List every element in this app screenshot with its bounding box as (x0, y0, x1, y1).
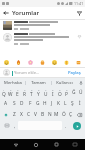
button[interactable]: S (10, 99, 18, 108)
button[interactable]: Ö (60, 110, 67, 119)
button[interactable]: D (18, 99, 26, 108)
button[interactable]: H (41, 99, 48, 108)
button[interactable]: 7 (42, 88, 49, 97)
button[interactable]: Ü (77, 88, 84, 97)
button[interactable]: Sayılar ve semboller (1, 121, 12, 130)
staticText: . (65, 123, 67, 129)
button[interactable]: Kullanıcı (52, 78, 77, 87)
staticText: J (51, 100, 53, 107)
button[interactable]: N (46, 110, 53, 119)
button[interactable]: M (53, 110, 60, 119)
button[interactable]: Beğen (0, 33, 85, 45)
button[interactable]: Emoji (15, 59, 22, 66)
staticText: R (23, 91, 26, 97)
button[interactable]: 3 (14, 88, 21, 97)
button[interactable]: Beğen (76, 33, 82, 39)
button[interactable]: 5 (28, 88, 35, 97)
staticText: Y (37, 91, 40, 97)
staticText: F (29, 100, 32, 107)
staticText: 3 (17, 88, 19, 91)
button[interactable]: Geri (0, 7, 12, 19)
button[interactable]: F (26, 99, 34, 108)
button[interactable]: X (18, 110, 25, 119)
button[interactable]: Z (11, 110, 18, 119)
staticText: L (64, 100, 67, 107)
staticText: K (57, 100, 60, 107)
button[interactable]: Yorum ekle… (12, 70, 67, 76)
button[interactable]: K (55, 99, 62, 108)
button[interactable]: Tamam (26, 78, 51, 87)
staticText: Ö (62, 111, 66, 118)
button[interactable]: 4 (21, 88, 28, 97)
staticText: S (13, 100, 16, 107)
button[interactable]: . (62, 121, 69, 130)
staticText: 0 (66, 88, 68, 91)
staticText: C (27, 111, 31, 118)
staticText: 8 (52, 88, 54, 91)
button[interactable]: 1 (1, 88, 7, 97)
button[interactable]: Merhaba (0, 78, 25, 87)
staticText: 11:41 (74, 1, 84, 6)
button[interactable]: C (25, 110, 32, 119)
button[interactable] (0, 21, 85, 30)
button[interactable]: Emoji (51, 59, 58, 66)
staticText: Kullanıcı (56, 80, 73, 86)
button[interactable]: Ana ekran (26, 139, 46, 150)
staticText: Paylaş (68, 70, 81, 75)
button[interactable]: Sil (74, 110, 84, 119)
staticText: A (4, 100, 8, 107)
button[interactable]: Ç (67, 110, 74, 119)
button[interactable]: Sırala (73, 7, 85, 19)
button[interactable]: Emoji (27, 59, 34, 66)
button[interactable]: Gönder (73, 122, 81, 130)
button[interactable]: 8 (49, 88, 56, 97)
staticText: Merhaba (4, 80, 22, 86)
button[interactable]: Emoji (3, 59, 10, 66)
button[interactable]: Sesle yaz (77, 78, 85, 87)
button[interactable]: 0 (63, 88, 70, 97)
staticText: H (43, 100, 47, 107)
button[interactable]: 9 (56, 88, 63, 97)
button[interactable]: V (32, 110, 39, 119)
staticText: N (48, 111, 52, 118)
staticText: B (41, 111, 45, 118)
button[interactable]: Son uygulamalar (46, 139, 66, 150)
staticText: 6 (38, 88, 40, 91)
button[interactable]: 6 (35, 88, 42, 97)
staticText: M (54, 111, 59, 118)
button[interactable]: 2 (7, 88, 14, 97)
button[interactable]: Paylaş (67, 68, 82, 77)
button[interactable]: Emoji (75, 59, 82, 66)
button[interactable]: B (39, 110, 46, 119)
staticText: , (14, 123, 16, 129)
staticText: I (52, 91, 54, 97)
staticText: W (8, 91, 13, 97)
button[interactable]: Ğ (70, 88, 77, 97)
button[interactable]: , (12, 121, 18, 130)
button[interactable]: J (48, 99, 55, 108)
staticText: 5 (31, 88, 33, 91)
staticText: 1 (3, 88, 5, 91)
staticText: Ü (79, 89, 83, 96)
staticText: O (58, 91, 62, 97)
staticText: Tamam (31, 80, 46, 86)
button[interactable]: L (62, 99, 69, 108)
button[interactable]: G (34, 99, 41, 108)
staticText: Ğ (72, 89, 76, 96)
staticText: V (34, 111, 37, 118)
staticText: T (30, 91, 33, 97)
staticText: Q (2, 91, 6, 97)
button[interactable]: A (2, 99, 10, 108)
button[interactable]: İ (76, 99, 83, 108)
button[interactable]: Ş (69, 99, 76, 108)
button[interactable]: Klavye değiştir (66, 139, 83, 150)
button[interactable]: Klavyeyi kapat (6, 139, 26, 150)
button[interactable]: Emoji (63, 59, 70, 66)
button[interactable]: Emoji (39, 59, 46, 66)
staticText: Yorumlar (12, 9, 40, 17)
button[interactable]: Shift (1, 110, 11, 119)
staticText: 2 (10, 88, 12, 91)
staticText: D (20, 100, 24, 107)
staticText: X (20, 111, 23, 118)
